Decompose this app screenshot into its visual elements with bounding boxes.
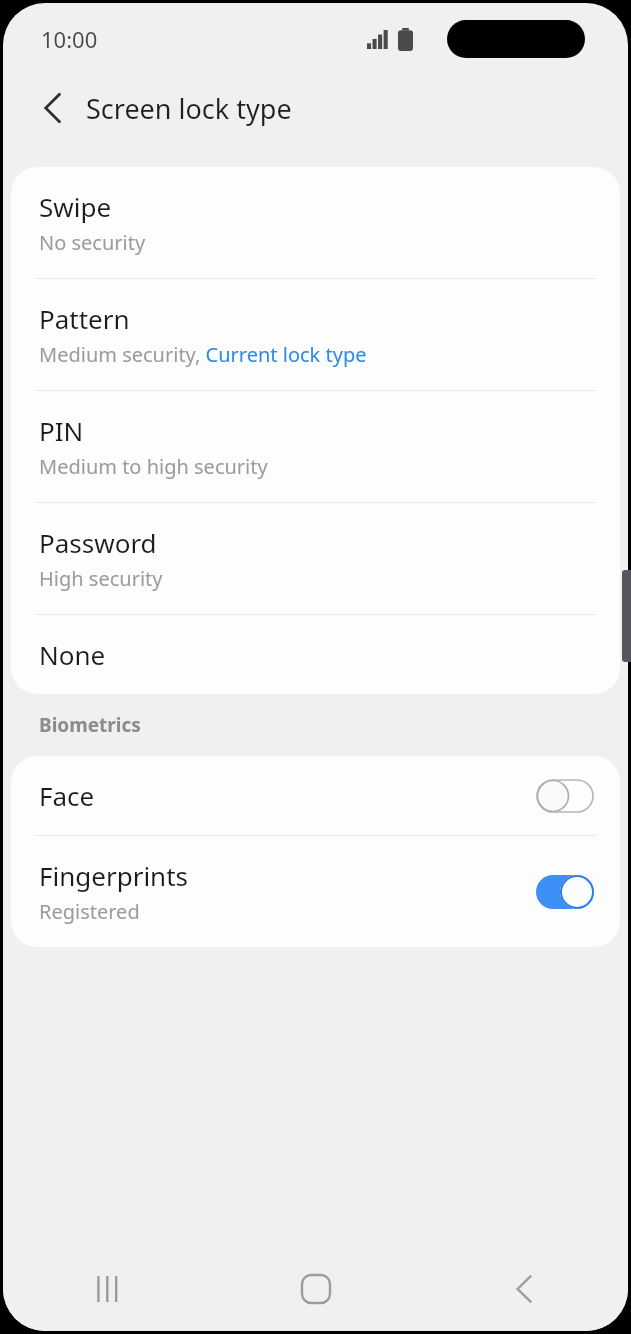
staticText: Pattern xyxy=(39,301,130,336)
staticText: High security xyxy=(39,565,163,592)
button[interactable]: Back xyxy=(29,85,75,131)
staticText: Swipe xyxy=(39,189,112,224)
button[interactable]: Face xyxy=(11,756,620,835)
staticText: Password xyxy=(39,525,157,560)
staticText: 10:00 xyxy=(41,24,98,54)
button[interactable]: Home xyxy=(212,1247,420,1331)
button[interactable]: Password xyxy=(11,503,620,614)
staticText: Face xyxy=(39,778,95,813)
button[interactable]: Fingerprints xyxy=(11,836,620,947)
staticText: Screen lock type xyxy=(86,90,292,127)
staticText: Medium to high security xyxy=(39,453,268,480)
button[interactable]: PIN xyxy=(11,391,620,502)
button[interactable]: Off xyxy=(536,779,594,813)
staticText: PIN xyxy=(39,413,84,448)
staticText: Registered xyxy=(39,898,140,925)
button[interactable]: Back xyxy=(420,1247,628,1331)
button[interactable]: Recents xyxy=(3,1247,212,1331)
button[interactable]: On xyxy=(536,875,594,909)
staticText: Medium security, Current lock type xyxy=(39,341,367,368)
staticText: Biometrics xyxy=(39,712,141,738)
staticText: None xyxy=(39,637,106,672)
staticText: Fingerprints xyxy=(39,858,189,893)
button[interactable]: Swipe xyxy=(11,167,620,278)
staticText: No security xyxy=(39,229,146,256)
button[interactable]: None xyxy=(11,615,620,694)
button[interactable]: Pattern xyxy=(11,279,620,390)
